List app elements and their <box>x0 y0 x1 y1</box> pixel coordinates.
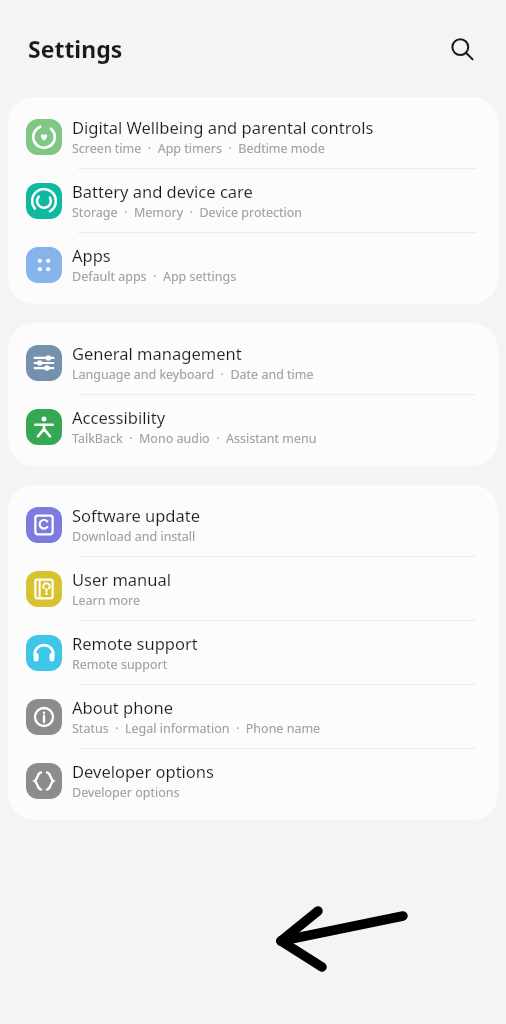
staticText: TalkBack · Mono audio · Assistant menu <box>72 430 317 447</box>
button[interactable]: Apps <box>8 233 498 296</box>
staticText: Battery and device care <box>72 180 253 202</box>
staticText: About phone <box>72 696 173 718</box>
staticText: Apps <box>72 244 111 266</box>
staticText: Developer options <box>72 784 180 801</box>
staticText: Remote support <box>72 632 198 654</box>
staticText: Storage · Memory · Device protection <box>72 204 303 221</box>
button[interactable]: Software update <box>8 493 498 556</box>
button[interactable]: Digital Wellbeing and parental controls <box>8 105 498 168</box>
button[interactable]: General management <box>8 331 498 394</box>
button[interactable]: Battery and device care <box>8 169 498 232</box>
staticText: Digital Wellbeing and parental controls <box>72 116 374 138</box>
button[interactable]: User manual <box>8 557 498 620</box>
staticText: Status · Legal information · Phone name <box>72 720 321 737</box>
staticText: Settings <box>28 33 123 64</box>
staticText: Default apps · App settings <box>72 268 237 285</box>
staticText: Accessibility <box>72 406 166 428</box>
button[interactable]: Remote support <box>8 621 498 684</box>
button[interactable]: Developer options <box>8 749 498 812</box>
staticText: Remote support <box>72 656 168 673</box>
staticText: User manual <box>72 568 171 590</box>
button[interactable]: Accessibility <box>8 395 498 458</box>
staticText: Learn more <box>72 592 140 609</box>
button[interactable]: Search <box>440 27 484 71</box>
staticText: Download and install <box>72 528 196 545</box>
staticText: Software update <box>72 504 200 526</box>
staticText: Screen time · App timers · Bedtime mode <box>72 140 325 157</box>
staticText: Language and keyboard · Date and time <box>72 366 314 383</box>
button[interactable]: About phone <box>8 685 498 748</box>
staticText: General management <box>72 342 242 364</box>
staticText: Developer options <box>72 760 214 782</box>
